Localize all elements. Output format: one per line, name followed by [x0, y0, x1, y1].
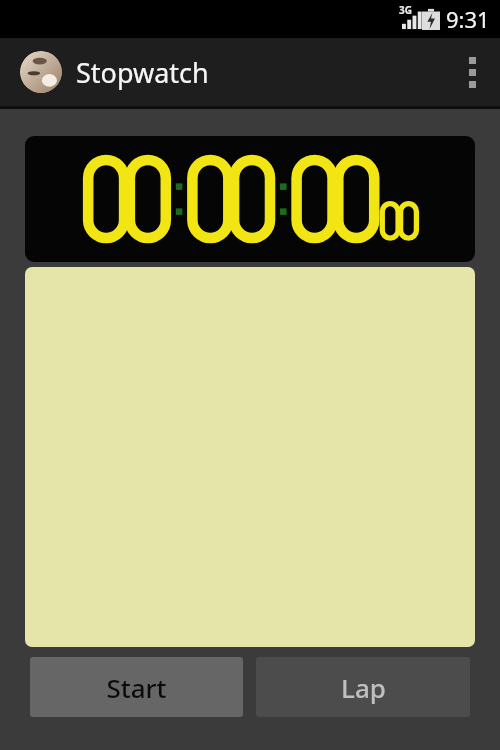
staticText: 3G: [399, 3, 412, 17]
button[interactable]: Lap: [256, 657, 470, 717]
staticText: Stopwatch: [76, 54, 209, 91]
staticText: Start: [106, 670, 167, 705]
staticText: Lap: [341, 670, 386, 705]
button[interactable]: Start: [30, 657, 243, 717]
button[interactable]: More options: [444, 38, 500, 106]
staticText: 9:31: [446, 4, 490, 34]
